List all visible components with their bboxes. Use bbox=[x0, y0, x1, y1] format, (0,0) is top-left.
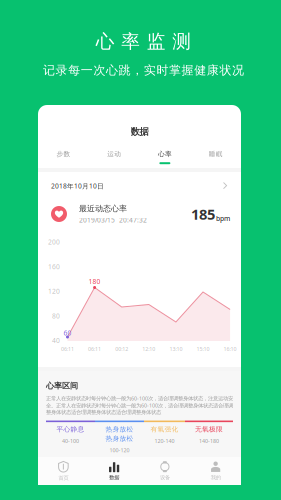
staticText: 无氧极限 bbox=[195, 425, 223, 433]
button[interactable]: 2018年10月10日 bbox=[38, 175, 241, 197]
button[interactable]: 设备 bbox=[139, 457, 190, 485]
staticText: 80 bbox=[52, 311, 60, 320]
staticText: 平心静息 bbox=[56, 425, 84, 433]
staticText: 00:12 bbox=[115, 345, 128, 353]
staticText: 120-140 bbox=[154, 437, 174, 444]
staticText: 120 bbox=[48, 287, 60, 296]
staticText: 13:10 bbox=[169, 345, 182, 353]
button[interactable]: 步数 bbox=[38, 150, 89, 164]
staticText: 12:10 bbox=[142, 345, 155, 353]
staticText: bpm bbox=[216, 214, 230, 223]
staticText: 100-120 bbox=[109, 446, 129, 454]
staticText: 最近动态心率 bbox=[79, 204, 127, 213]
staticText: 2018年10月10日 bbox=[51, 182, 104, 190]
staticText: 185 bbox=[191, 204, 215, 224]
button[interactable]: 运动 bbox=[89, 150, 140, 164]
staticText: 16:10 bbox=[224, 345, 237, 353]
staticText: 06:11 bbox=[88, 345, 101, 353]
button[interactable]: 首页 bbox=[38, 457, 89, 485]
staticText: 数据 bbox=[130, 126, 148, 137]
staticText: 200 bbox=[48, 238, 60, 246]
staticText: 心率监测 bbox=[96, 30, 191, 53]
staticText: 心率 bbox=[158, 150, 172, 158]
staticText: 160 bbox=[48, 262, 60, 271]
staticText: 睡眠 bbox=[209, 150, 223, 158]
button[interactable]: 睡眠 bbox=[190, 150, 241, 164]
staticText: 正常人在安静状态时每分钟心跳一般为60-100次，适合理调整身体状态，注意运动安… bbox=[46, 395, 233, 415]
staticText: 热身放松 bbox=[105, 425, 133, 433]
staticText: 数据 bbox=[109, 474, 119, 481]
button[interactable]: 心率 bbox=[139, 150, 190, 164]
button[interactable]: 数据 bbox=[89, 457, 140, 485]
staticText: 06:11 bbox=[61, 345, 74, 353]
staticText: 记录每一次心跳，实时掌握健康状况 bbox=[43, 63, 244, 78]
staticText: 40-100 bbox=[62, 437, 79, 444]
staticText: 有氧强化 bbox=[150, 425, 178, 433]
staticText: 我的 bbox=[211, 474, 221, 481]
staticText: 运动 bbox=[107, 150, 121, 158]
staticText: 设备 bbox=[160, 474, 170, 481]
staticText: 140-180 bbox=[199, 437, 219, 444]
staticText: 2019/03/15 20:47:32 bbox=[79, 215, 147, 224]
staticText: 热身放松 bbox=[105, 434, 133, 442]
staticText: 180 bbox=[89, 277, 101, 286]
button[interactable]: 我的 bbox=[190, 457, 241, 485]
staticText: 首页 bbox=[58, 475, 68, 481]
staticText: 15:10 bbox=[196, 345, 209, 353]
staticText: 40 bbox=[52, 336, 60, 345]
staticText: 步数 bbox=[56, 150, 70, 158]
staticText: 60 bbox=[63, 329, 71, 337]
staticText: 心率区间 bbox=[46, 381, 78, 391]
